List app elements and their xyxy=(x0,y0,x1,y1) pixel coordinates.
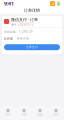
staticText: 微信支付 · 订单 xyxy=(11,17,38,22)
button[interactable]: 购物 xyxy=(32,105,48,120)
staticText: 交易金额：1,280.00 xyxy=(4,30,33,33)
button[interactable]: 我的 xyxy=(48,105,64,120)
staticText: 9:41 xyxy=(4,0,14,7)
staticText: 我的 xyxy=(53,113,59,116)
staticText: 编号 20240512 xyxy=(11,23,34,26)
button[interactable]: 首页 xyxy=(0,105,16,120)
staticText: 查看详情 xyxy=(17,37,29,40)
staticText: 立即支付 xyxy=(26,46,38,49)
button[interactable]: 分类 xyxy=(16,105,32,120)
staticText: 首页 xyxy=(5,113,11,116)
button[interactable]: 立即支付 xyxy=(4,44,60,50)
staticText: 分类 xyxy=(21,113,27,116)
staticText: 购物 xyxy=(37,113,43,116)
staticText: 已完成 xyxy=(4,37,13,40)
staticText: 订单详情 xyxy=(24,8,40,13)
staticText: 📶 🔋 xyxy=(50,1,61,6)
